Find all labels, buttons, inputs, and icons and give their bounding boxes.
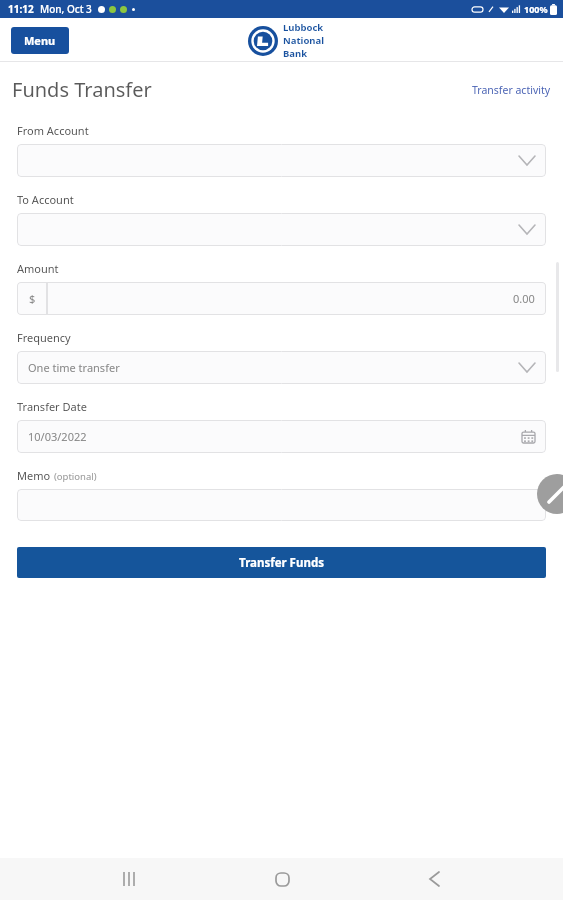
staticText: Lubbock [283,21,324,34]
staticText: To Account [17,192,74,207]
staticText: Funds Transfer [12,76,152,103]
staticText: From Account [17,123,89,138]
button[interactable]: Edit [537,474,563,514]
button[interactable]: Lubbock [248,21,325,60]
staticText: Amount [17,261,59,276]
staticText: Transfer Funds [239,555,324,571]
staticText: Menu [24,33,56,48]
button[interactable]: Transfer Funds [17,547,546,578]
button[interactable] [17,489,546,521]
staticText: $ [29,291,36,306]
button[interactable]: Home [258,858,306,900]
button[interactable]: One time transfer [17,351,546,384]
button[interactable]: Recents [105,858,153,900]
staticText: 0.00 [513,291,535,306]
other: Pick date [522,430,535,443]
button[interactable]: 10/03/2022 [17,420,546,453]
button[interactable]: Back [410,858,458,900]
button[interactable] [17,144,546,177]
staticText: Bank [283,47,308,60]
staticText: Transfer activity [472,83,551,97]
staticText: Mon, Oct 3 [40,2,92,16]
staticText: Frequency [17,330,71,345]
staticText: One time transfer [28,360,120,375]
button[interactable]: Transfer activity [472,79,551,101]
staticText: National [283,34,325,47]
staticText: (optional) [54,470,97,483]
staticText: 11:12 [8,2,34,16]
button[interactable]: Menu [11,27,69,54]
staticText: Transfer Date [17,399,87,414]
staticText: 10/03/2022 [28,429,87,444]
button[interactable]: 0.00 [47,282,546,315]
staticText: Memo [17,468,51,483]
staticText: 100% [524,3,548,15]
button[interactable] [17,213,546,246]
